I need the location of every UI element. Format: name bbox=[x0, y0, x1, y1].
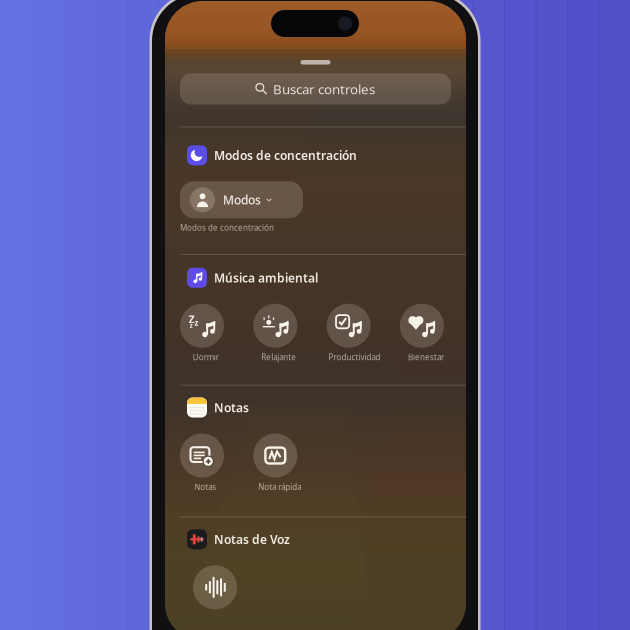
staticText: Modos bbox=[223, 192, 261, 208]
staticText: Modos de concentración bbox=[180, 222, 274, 233]
staticText: z bbox=[194, 317, 198, 328]
button[interactable]: Grabar nota de voz bbox=[180, 565, 250, 609]
staticText: Dormir bbox=[193, 352, 219, 362]
staticText: Notas de Voz bbox=[214, 531, 290, 547]
button[interactable]: Z bbox=[180, 304, 253, 361]
staticText: Productividad bbox=[328, 352, 380, 362]
staticText: Notas bbox=[214, 400, 249, 415]
staticText: Bienestar bbox=[408, 352, 444, 362]
staticText: Modos de concentración bbox=[214, 147, 357, 163]
button[interactable]: Notas bbox=[180, 433, 253, 490]
button[interactable]: Buscar controles bbox=[180, 73, 451, 104]
staticText: Buscar controles bbox=[273, 80, 375, 98]
staticText: Nota rápida bbox=[258, 481, 301, 492]
button[interactable]: Nota rápida bbox=[253, 433, 327, 490]
staticText: Notas bbox=[194, 481, 216, 492]
staticText: Relajante bbox=[261, 352, 296, 362]
staticText: Música ambiental bbox=[214, 270, 318, 286]
button[interactable]: Bienestar bbox=[400, 304, 473, 361]
staticText: z bbox=[190, 321, 193, 330]
button[interactable]: Productividad bbox=[327, 304, 400, 361]
button[interactable]: Relajante bbox=[253, 304, 327, 361]
staticText: Z bbox=[188, 312, 194, 326]
button[interactable]: Modos bbox=[180, 181, 303, 233]
